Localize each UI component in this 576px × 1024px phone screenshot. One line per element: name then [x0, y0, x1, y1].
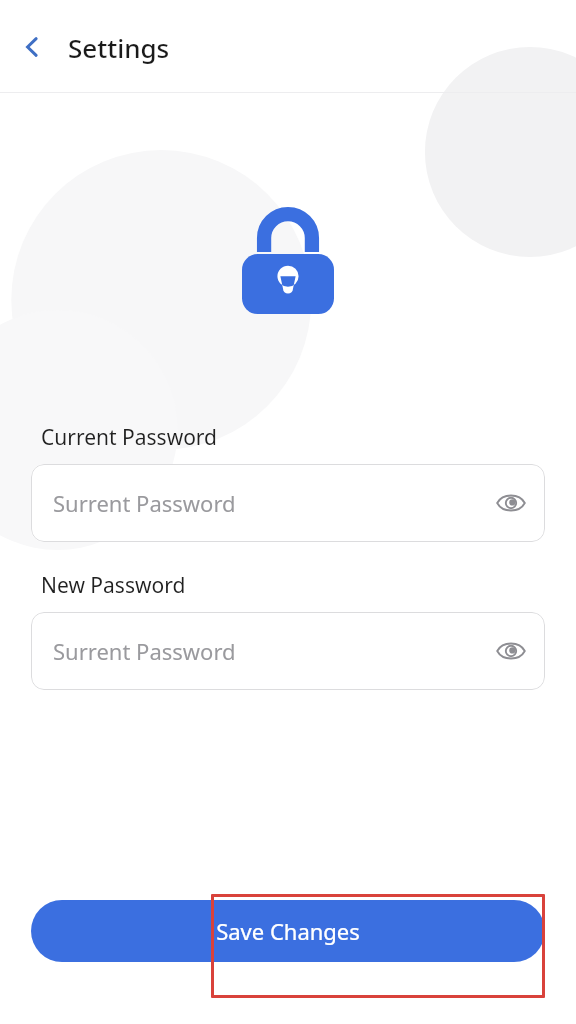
staticText: Save Changes [216, 916, 360, 946]
staticText: Settings [68, 30, 170, 65]
button[interactable]: Save Changes [31, 900, 545, 962]
staticText: New Password [41, 571, 186, 600]
button[interactable]: Show password [487, 627, 535, 675]
button[interactable]: Surrent Password [31, 612, 545, 690]
staticText: Surrent Password [53, 488, 236, 518]
button[interactable]: Surrent Password [31, 464, 545, 542]
button[interactable]: Show password [487, 479, 535, 527]
staticText: Surrent Password [53, 636, 236, 666]
button[interactable]: Back [8, 23, 56, 71]
staticText: Current Password [41, 423, 218, 452]
